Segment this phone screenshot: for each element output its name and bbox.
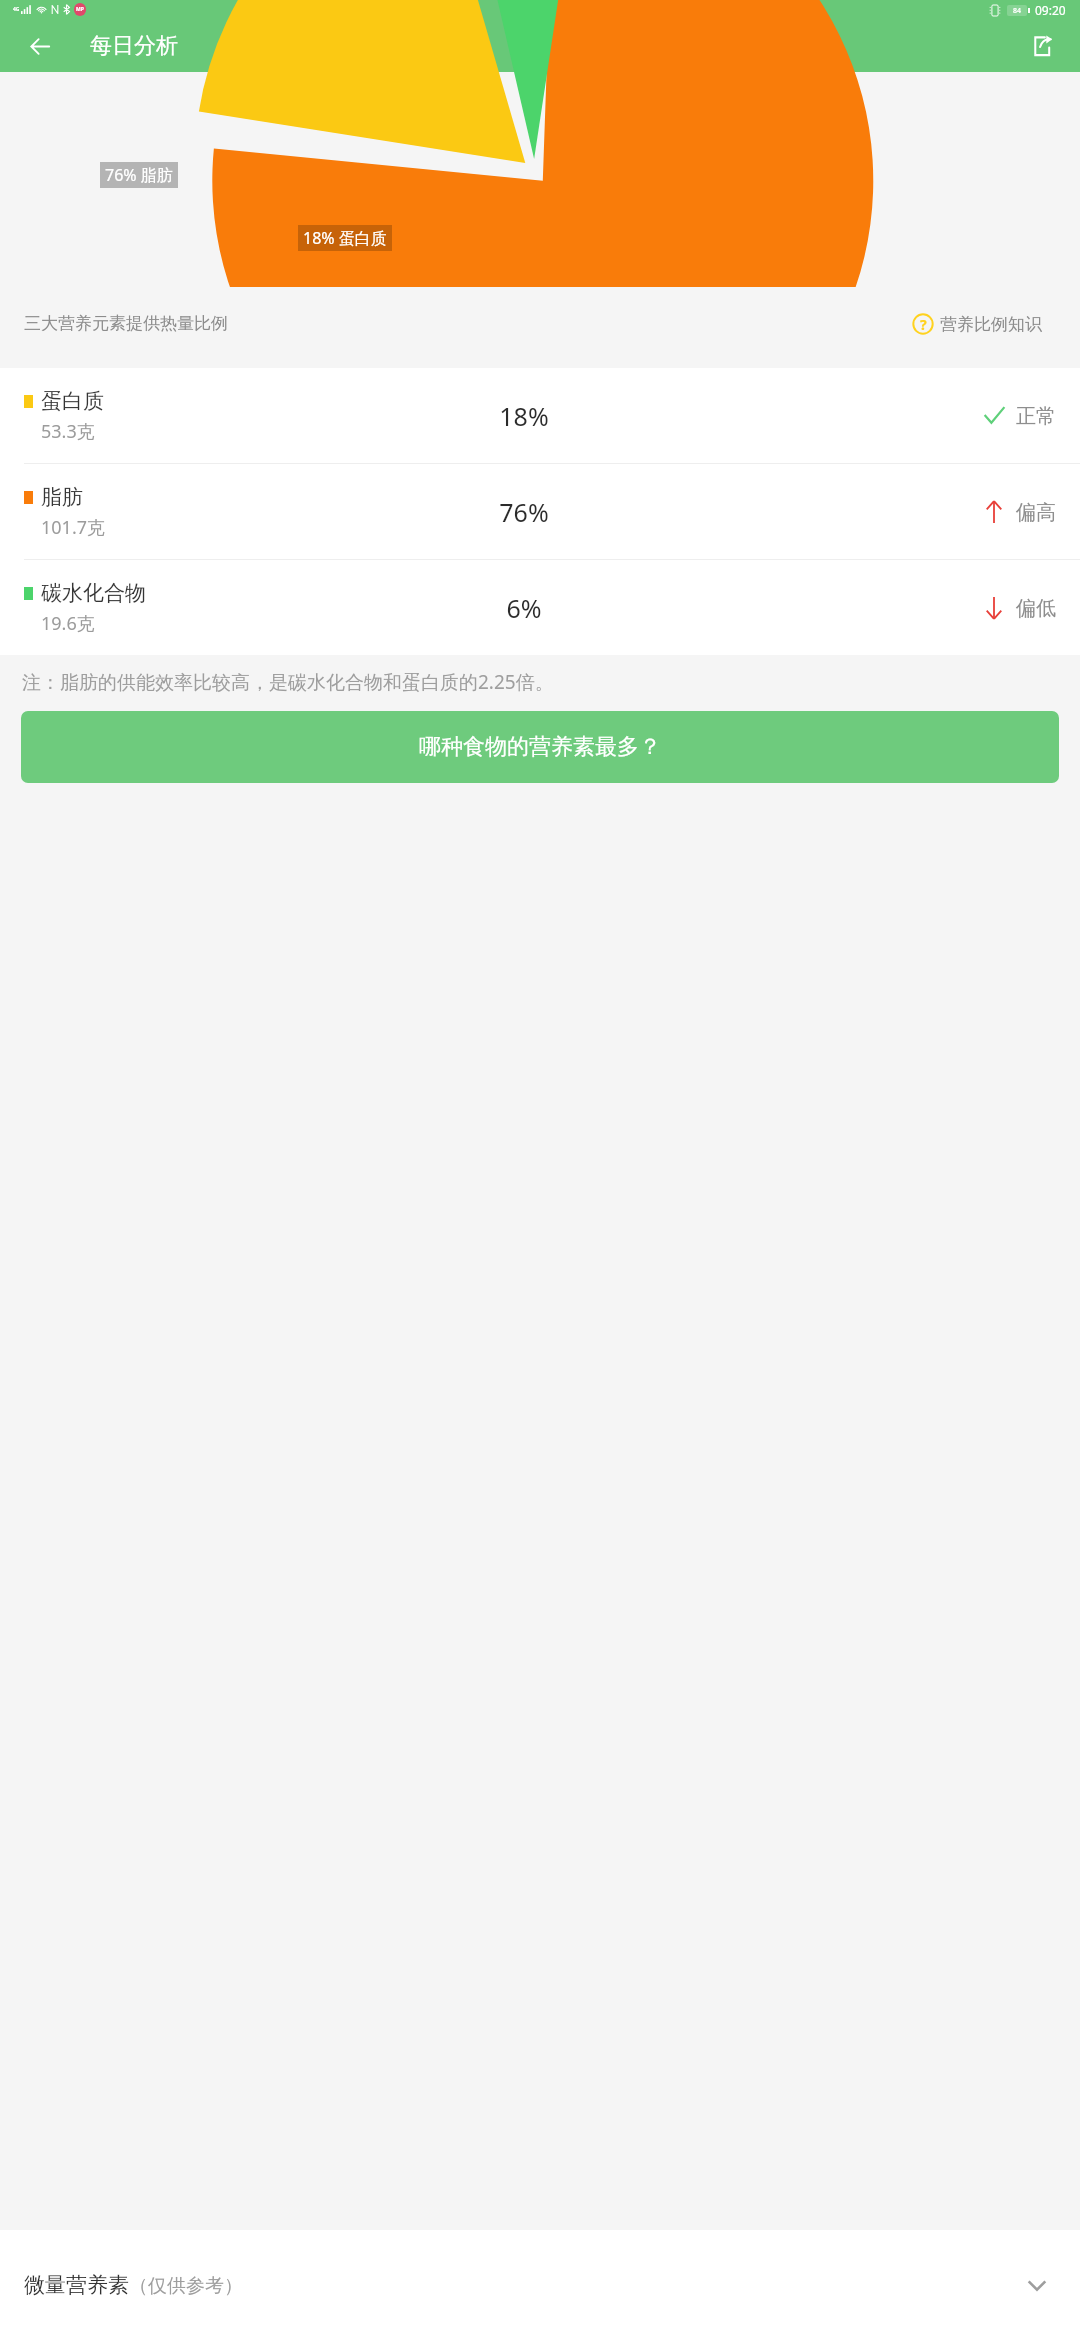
staticText: MP: [76, 6, 84, 13]
button[interactable]: 碳水化合物: [0, 560, 1080, 655]
staticText: 微量营养素: [24, 2272, 129, 2298]
staticText: 三大营养元素提供热量比例: [24, 313, 228, 334]
staticText: 碳水化合物: [41, 580, 146, 606]
staticText: 营养比例知识: [940, 314, 1042, 335]
button[interactable]: 微量营养素: [0, 2230, 1080, 2340]
button[interactable]: Share: [1020, 24, 1064, 68]
button[interactable]: 哪种食物的营养素最多？: [21, 711, 1059, 783]
staticText: 53.3克: [41, 419, 95, 444]
staticText: 蛋白质: [41, 388, 104, 414]
staticText: 脂肪: [41, 484, 83, 510]
staticText: 76%: [459, 495, 589, 529]
button[interactable]: ?: [908, 309, 1062, 339]
staticText: 每日分析: [90, 32, 178, 60]
staticText: 4G: [13, 6, 20, 13]
button[interactable]: Back: [18, 24, 62, 68]
staticText: 84: [1013, 6, 1022, 16]
staticText: 19.6克: [41, 611, 95, 636]
staticText: 09:20: [1035, 2, 1066, 18]
staticText: 76% 脂肪: [105, 164, 173, 186]
staticText: 注：脂肪的供能效率比较高，是碳水化合物和蛋白质的2.25倍。: [22, 669, 554, 695]
staticText: （仅供参考）: [129, 2274, 243, 2298]
staticText: 101.7克: [41, 515, 106, 540]
staticText: 18%: [459, 399, 589, 433]
staticText: 6%: [459, 591, 589, 625]
staticText: 哪种食物的营养素最多？: [419, 733, 661, 761]
button[interactable]: 脂肪: [0, 464, 1080, 559]
staticText: 正常: [1016, 404, 1056, 429]
staticText: 18% 蛋白质: [303, 227, 387, 249]
staticText: 偏低: [1016, 596, 1056, 621]
staticText: 偏高: [1016, 500, 1056, 525]
button[interactable]: 蛋白质: [0, 368, 1080, 463]
staticText: ?: [920, 315, 927, 334]
